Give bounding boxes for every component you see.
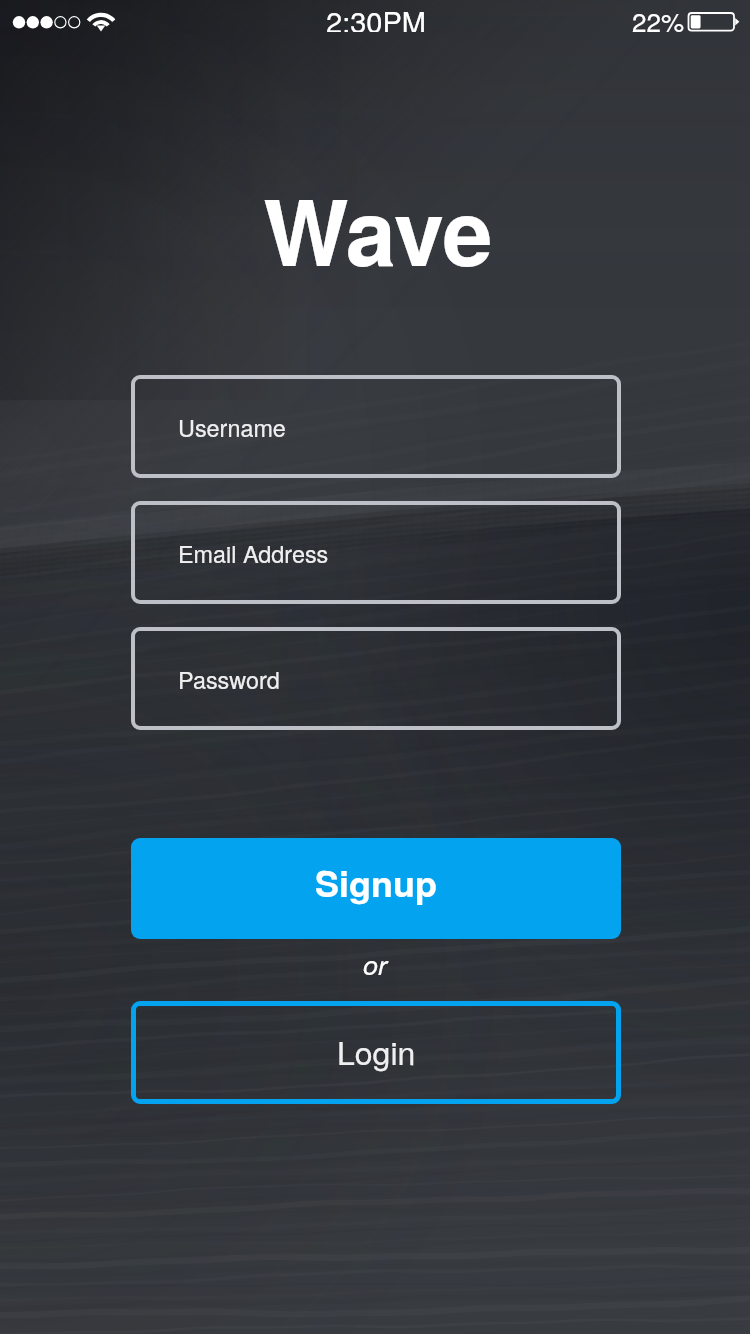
button[interactable]: Signup bbox=[131, 838, 621, 939]
button[interactable]: Username bbox=[131, 375, 621, 478]
staticText: 2:30PM bbox=[276, 0, 476, 32]
staticText: Email Address bbox=[178, 536, 329, 570]
button[interactable]: Email Address bbox=[131, 501, 621, 604]
staticText: Password bbox=[178, 662, 280, 696]
staticText: Login bbox=[337, 1028, 416, 1074]
staticText: 22% bbox=[563, 2, 684, 34]
button[interactable]: Password bbox=[131, 627, 621, 730]
staticText: Username bbox=[178, 410, 286, 444]
staticText: Wave bbox=[3, 165, 750, 275]
staticText: or bbox=[0, 945, 750, 979]
staticText: Signup bbox=[315, 856, 438, 908]
button[interactable]: Login bbox=[131, 1001, 621, 1104]
